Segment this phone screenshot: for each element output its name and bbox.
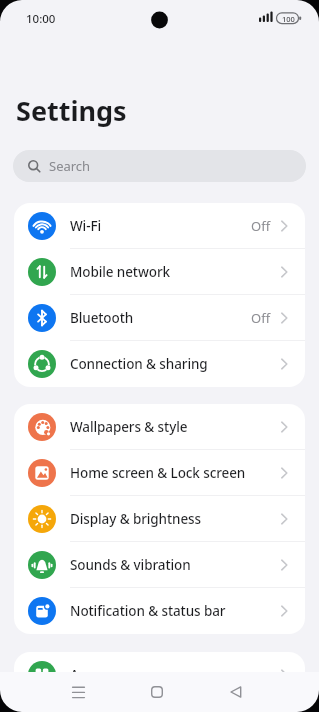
staticText: Apps bbox=[70, 666, 102, 684]
button[interactable]: Mobile network bbox=[14, 249, 305, 295]
button[interactable]: Bluetooth bbox=[14, 295, 305, 341]
button[interactable]: Notification & status bar bbox=[14, 588, 305, 634]
staticText: Settings bbox=[16, 92, 127, 129]
staticText: Display & brightness bbox=[70, 510, 201, 528]
staticText: 100 bbox=[282, 14, 295, 24]
staticText: Wallpapers & style bbox=[70, 418, 188, 436]
staticText: Mobile network bbox=[70, 263, 170, 281]
staticText: Connection & sharing bbox=[70, 355, 208, 373]
staticText: 10:00 bbox=[26, 11, 56, 27]
button[interactable] bbox=[137, 672, 177, 712]
button[interactable]: Apps bbox=[14, 652, 305, 698]
button[interactable]: Search bbox=[13, 150, 306, 182]
button[interactable]: Connection & sharing bbox=[14, 341, 305, 387]
button[interactable]: Wi-Fi bbox=[14, 203, 305, 249]
button[interactable] bbox=[216, 672, 256, 712]
staticText: Sounds & vibration bbox=[70, 556, 191, 574]
staticText: Wi-Fi bbox=[70, 217, 101, 235]
button[interactable]: Wallpapers & style bbox=[14, 404, 305, 450]
staticText: Off bbox=[251, 309, 271, 327]
button[interactable]: Display & brightness bbox=[14, 496, 305, 542]
staticText: Off bbox=[251, 217, 271, 235]
button[interactable]: Home screen & Lock screen bbox=[14, 450, 305, 496]
staticText: Search bbox=[49, 157, 91, 175]
button[interactable] bbox=[58, 672, 98, 712]
staticText: Home screen & Lock screen bbox=[70, 464, 246, 482]
staticText: Notification & status bar bbox=[70, 602, 226, 620]
button[interactable]: Sounds & vibration bbox=[14, 542, 305, 588]
staticText: Bluetooth bbox=[70, 309, 134, 327]
